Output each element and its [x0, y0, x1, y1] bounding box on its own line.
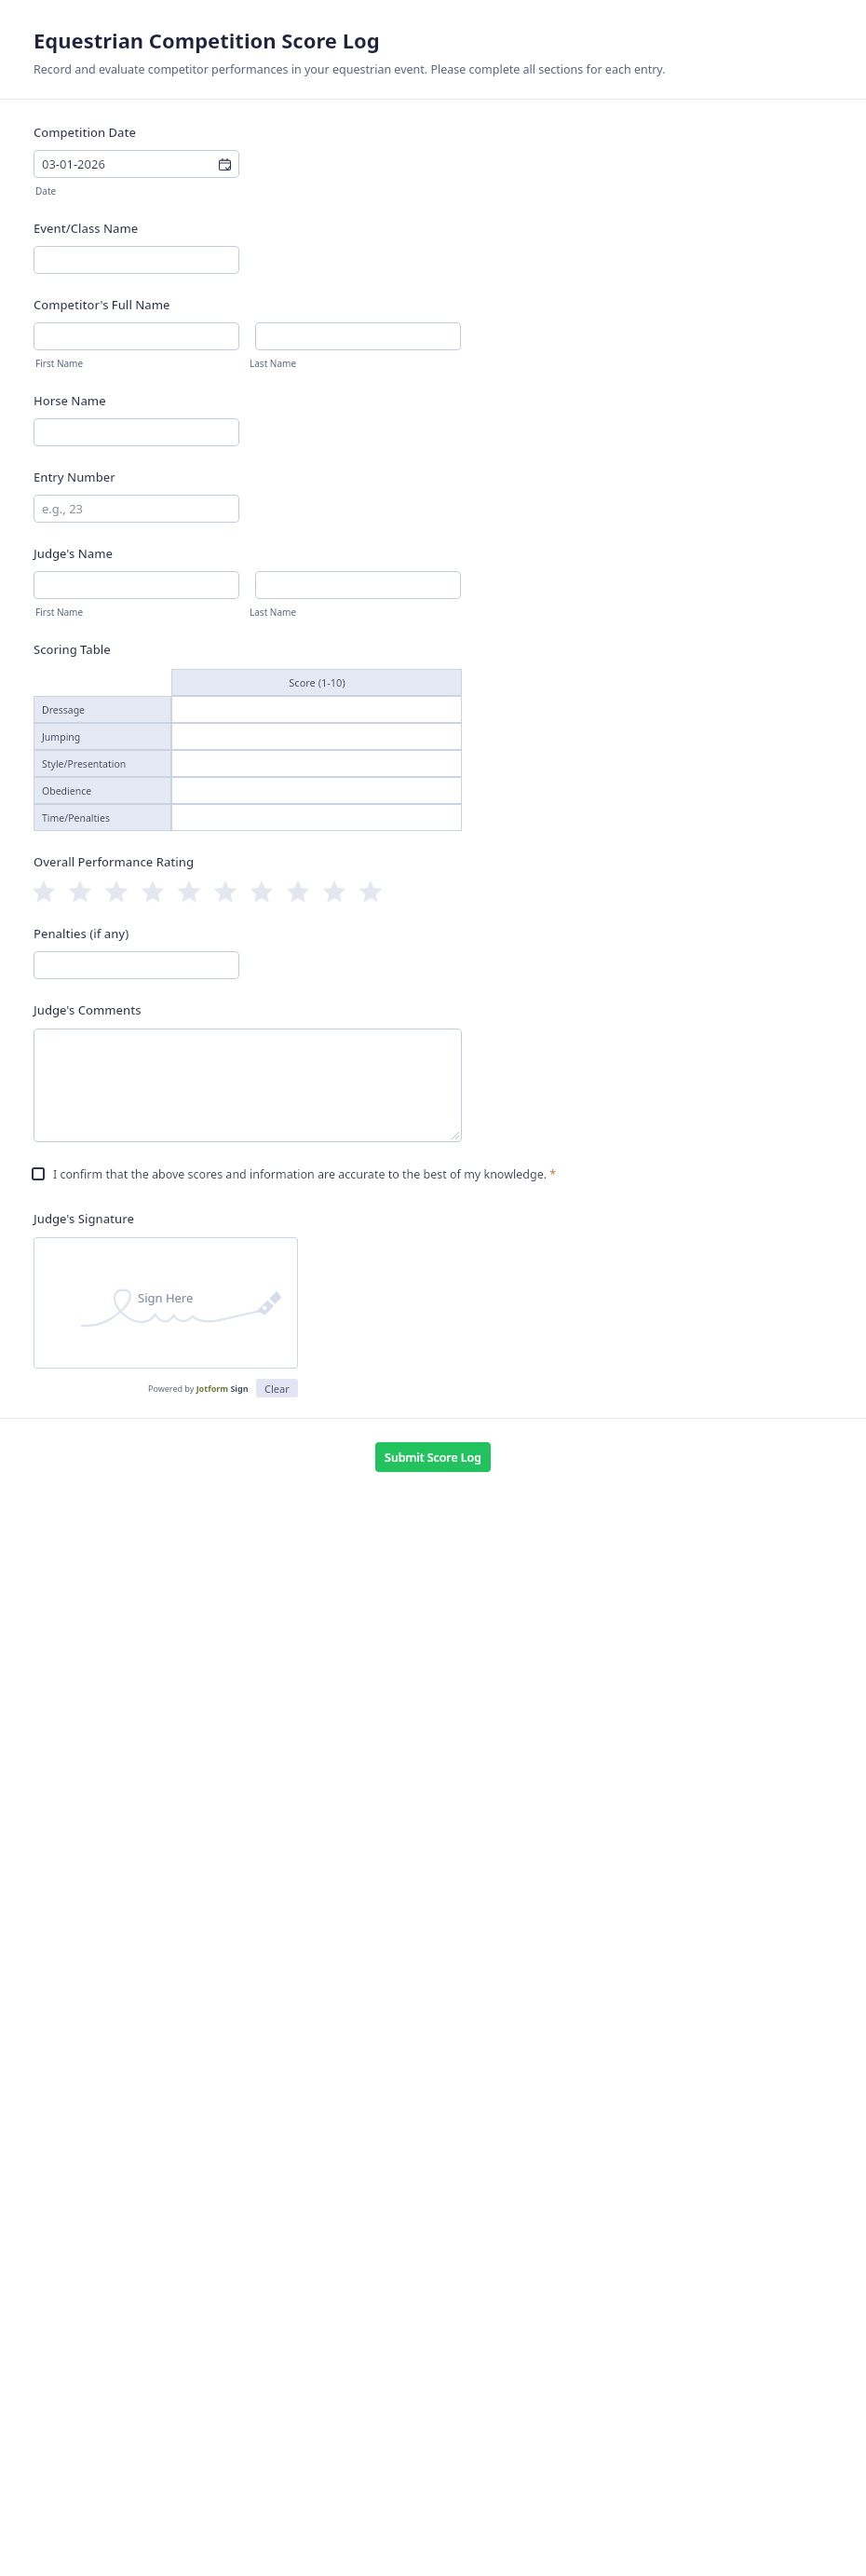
staticText: Horse Name [34, 392, 106, 409]
staticText: Style/Presentation [42, 757, 127, 770]
button[interactable]: Submit Score Log [375, 1442, 491, 1472]
staticText: Time/Penalties [42, 811, 111, 825]
staticText: First Name [35, 606, 84, 619]
button[interactable] [171, 723, 462, 750]
button[interactable] [34, 951, 239, 979]
staticText: Equestrian Competition Score Log [34, 26, 380, 54]
staticText: Judge's Name [34, 545, 114, 562]
button[interactable] [255, 322, 461, 350]
button[interactable] [171, 750, 462, 777]
button[interactable]: Clear [256, 1379, 298, 1397]
button[interactable] [34, 322, 239, 350]
staticText: I confirm that the above scores and info… [53, 1166, 557, 1182]
staticText: Score (1-10) [289, 675, 345, 689]
staticText: Clear [264, 1382, 290, 1396]
button[interactable]: Rate [359, 880, 383, 905]
button[interactable]: Signature pad [34, 1237, 298, 1369]
button[interactable]: I confirm that the above scores and info… [32, 1166, 557, 1182]
staticText: Penalties (if any) [34, 925, 129, 942]
staticText: Last Name [250, 606, 297, 619]
button[interactable]: Rate [286, 880, 310, 905]
staticText: Dressage [42, 703, 86, 716]
button[interactable] [34, 1029, 462, 1142]
button[interactable]: Rate [68, 880, 92, 905]
button[interactable] [34, 571, 239, 599]
staticText: 03-01-2026 [42, 156, 105, 172]
button[interactable]: Rate [322, 880, 346, 905]
staticText: Record and evaluate competitor performan… [34, 61, 666, 77]
button[interactable]: Rate [250, 880, 274, 905]
staticText: Submit Score Log [385, 1450, 481, 1465]
staticText: Competition Date [34, 124, 136, 141]
staticText: Obedience [42, 784, 92, 797]
button[interactable]: Rate [141, 880, 165, 905]
button[interactable] [34, 418, 239, 446]
button[interactable]: Rate [32, 880, 56, 905]
staticText: Date [35, 184, 57, 198]
staticText: Jumping [42, 730, 81, 743]
staticText: Event/Class Name [34, 220, 139, 237]
staticText: Sign Here [138, 1289, 194, 1306]
staticText: Overall Performance Rating [34, 853, 195, 870]
button[interactable]: 03-01-2026 [34, 150, 239, 178]
staticText: e.g., 23 [42, 500, 84, 517]
button[interactable]: Rate [213, 880, 237, 905]
staticText: Last Name [250, 357, 297, 370]
staticText: Judge's Comments [34, 1002, 142, 1018]
button[interactable] [171, 696, 462, 723]
staticText: Powered by Jotform Sign [148, 1383, 249, 1394]
button[interactable]: Rate [177, 880, 201, 905]
other: Pick date [219, 158, 231, 170]
button[interactable] [171, 804, 462, 831]
button[interactable]: e.g., 23 [34, 495, 239, 523]
staticText: Competitor's Full Name [34, 296, 170, 313]
staticText: First Name [35, 357, 84, 370]
staticText: Entry Number [34, 469, 115, 485]
button[interactable] [34, 246, 239, 274]
staticText: Scoring Table [34, 641, 111, 658]
staticText: Judge's Signature [34, 1210, 134, 1227]
button[interactable] [255, 571, 461, 599]
button[interactable] [171, 777, 462, 804]
button[interactable]: Rate [104, 880, 129, 905]
